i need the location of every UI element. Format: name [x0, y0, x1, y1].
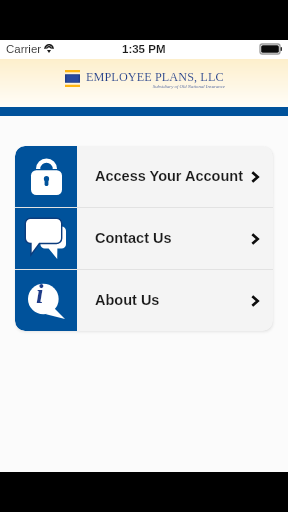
staticText: EMPLOYEE PLANS, LLC: [86, 70, 224, 84]
staticText: Access Your Account: [95, 168, 244, 184]
staticText: Contact Us: [95, 230, 172, 246]
staticText: Subsidiary of Old National Insurance: [86, 84, 225, 89]
staticText: 1:35 PM: [122, 43, 166, 56]
staticText: Carrier: [6, 43, 42, 56]
button[interactable]: Contact Us: [15, 208, 273, 269]
staticText: i: [36, 279, 44, 309]
button[interactable]: Access Your Account: [15, 146, 273, 207]
button[interactable]: i: [15, 270, 273, 331]
staticText: About Us: [95, 292, 160, 308]
